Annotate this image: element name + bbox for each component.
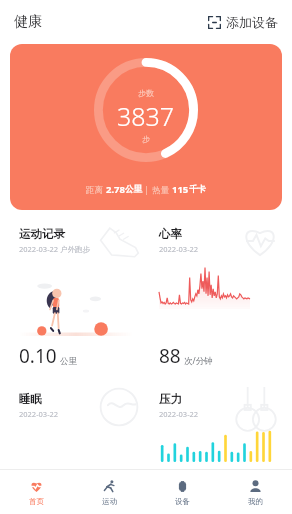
button[interactable]: 我的 [219, 470, 292, 514]
staticText: 首页 [29, 497, 44, 506]
other: 首页 [29, 479, 44, 494]
staticText: 3837 [117, 99, 175, 133]
staticText: 心率 [159, 227, 182, 241]
staticText: 热量 [152, 184, 172, 196]
other: 运动 [102, 479, 117, 494]
staticText: 2.78 [106, 183, 125, 196]
button[interactable]: 睡眠 [10, 384, 142, 469]
staticText: 睡眠 [19, 392, 42, 406]
staticText: 我的 [248, 497, 263, 506]
staticText: 次/分钟 [184, 355, 213, 367]
staticText: 0.10 [19, 343, 57, 369]
staticText: 2022-03-22 户外跑步 [19, 244, 91, 254]
button[interactable]: 步数 [10, 44, 282, 210]
staticText: 2022-03-22 [159, 409, 199, 419]
staticText: 运动 [102, 497, 117, 506]
staticText: 压力 [159, 392, 182, 406]
button[interactable]: 设备 [146, 470, 219, 514]
staticText: 2022-03-22 [159, 244, 199, 254]
staticText: 2022-03-22 [19, 409, 59, 419]
button[interactable]: 心率 [150, 219, 282, 376]
other: 我的 [248, 479, 263, 494]
button[interactable]: 压力 [150, 384, 282, 469]
staticText: 设备 [175, 497, 190, 506]
staticText: 88 [159, 343, 181, 369]
staticText: 距离 [86, 184, 106, 196]
button[interactable]: 运动记录 [10, 219, 142, 376]
staticText: 添加设备 [226, 14, 278, 30]
staticText: 115 [172, 183, 189, 196]
button[interactable]: 首页 [0, 470, 73, 514]
staticText: 步数 [138, 88, 154, 98]
staticText: 千卡 [189, 184, 206, 195]
button[interactable]: 添加设备 [204, 10, 282, 34]
staticText: 运动记录 [19, 227, 65, 241]
staticText: 步 [142, 134, 150, 144]
staticText: 健康 [14, 13, 42, 31]
staticText: 公里 [60, 356, 77, 367]
other: 设备 [175, 479, 190, 494]
button[interactable]: 运动 [73, 470, 146, 514]
staticText: | [142, 184, 152, 196]
staticText: 公里 [125, 184, 142, 195]
